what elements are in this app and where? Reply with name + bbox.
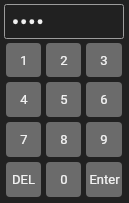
staticText: 4: [20, 92, 28, 107]
button[interactable]: PIN entry field: [4, 4, 124, 39]
button[interactable]: 3: [86, 43, 122, 77]
staticText: Enter: [89, 172, 120, 187]
button[interactable]: DEL: [6, 162, 41, 197]
staticText: 5: [60, 92, 68, 107]
button[interactable]: 6: [86, 82, 122, 117]
button[interactable]: Enter: [86, 162, 122, 197]
button[interactable]: 5: [46, 82, 81, 117]
staticText: 9: [100, 132, 108, 147]
button[interactable]: 9: [86, 122, 122, 157]
button[interactable]: 8: [46, 122, 81, 157]
button[interactable]: 2: [46, 43, 81, 77]
button[interactable]: 4: [6, 82, 41, 117]
button[interactable]: 0: [46, 162, 81, 197]
button[interactable]: 1: [6, 43, 41, 77]
staticText: DEL: [12, 172, 35, 187]
staticText: 1: [20, 53, 28, 68]
staticText: 6: [100, 92, 108, 107]
staticText: 7: [20, 132, 28, 147]
staticText: 2: [60, 53, 68, 68]
staticText: 0: [60, 172, 68, 187]
button[interactable]: 7: [6, 122, 41, 157]
staticText: 3: [100, 53, 108, 68]
staticText: 8: [60, 132, 68, 147]
